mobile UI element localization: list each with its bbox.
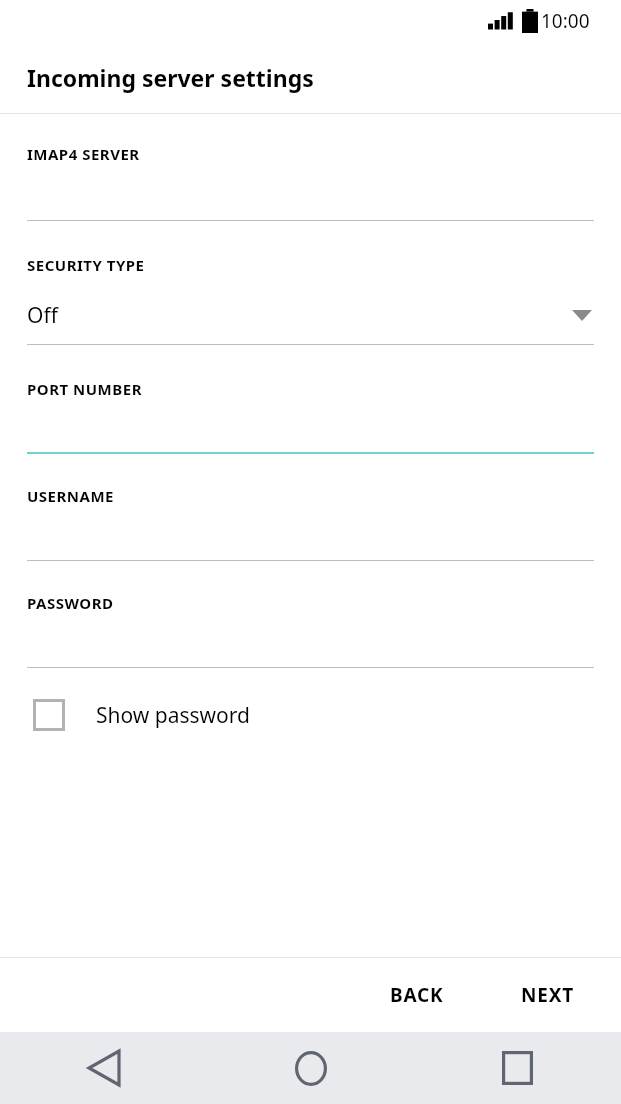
button[interactable]: BACK [374,958,460,1032]
button[interactable]: NEXT [505,958,590,1032]
button[interactable]: Back [0,1032,207,1104]
staticText: SECURITY TYPE [27,255,145,275]
button[interactable]: Show password [0,684,621,746]
staticText: NEXT [521,982,574,1008]
button[interactable]: Home [207,1032,414,1104]
staticText: PORT NUMBER [27,379,142,399]
staticText: Incoming server settings [27,62,314,93]
staticText: 10:00 [541,8,590,34]
staticText: Show password [96,701,250,730]
staticText: PASSWORD [27,593,114,613]
staticText: BACK [390,982,444,1008]
staticText: Off [27,301,58,330]
button[interactable]: Off [0,295,621,335]
button[interactable]: Recent apps [414,1032,621,1104]
staticText: IMAP4 SERVER [27,144,140,164]
staticText: USERNAME [27,486,114,506]
